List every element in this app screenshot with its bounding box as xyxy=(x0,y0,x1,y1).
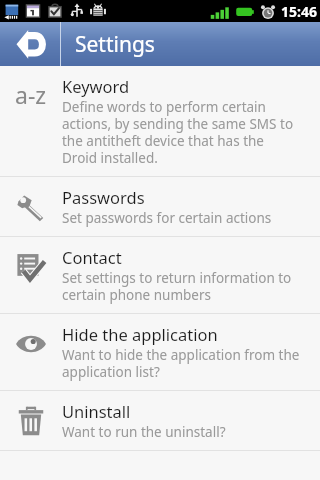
button[interactable]: Uninstall xyxy=(0,391,320,450)
staticText: Contact xyxy=(62,246,122,268)
staticText: 15:46 xyxy=(281,2,317,21)
staticText: Keyword xyxy=(62,75,130,97)
button[interactable]: a-z xyxy=(0,66,320,176)
button[interactable]: Contact xyxy=(0,237,320,313)
staticText: Uninstall xyxy=(62,400,131,422)
staticText: Settings xyxy=(75,30,155,59)
staticText: a-z xyxy=(15,79,47,110)
staticText: Want to hide the application from the ap… xyxy=(62,346,302,381)
staticText: Hide the application xyxy=(62,323,218,345)
button[interactable]: Passwords xyxy=(0,177,320,236)
staticText: Want to run the uninstall? xyxy=(62,423,226,441)
staticText: Set settings to return information to ce… xyxy=(62,269,302,304)
staticText: Passwords xyxy=(62,186,145,208)
staticText: Set passwords for certain actions xyxy=(62,209,272,227)
button[interactable]: Hide the application xyxy=(0,314,320,390)
staticText: Define words to perform certain actions,… xyxy=(62,98,302,167)
button[interactable]: Back xyxy=(0,22,60,66)
